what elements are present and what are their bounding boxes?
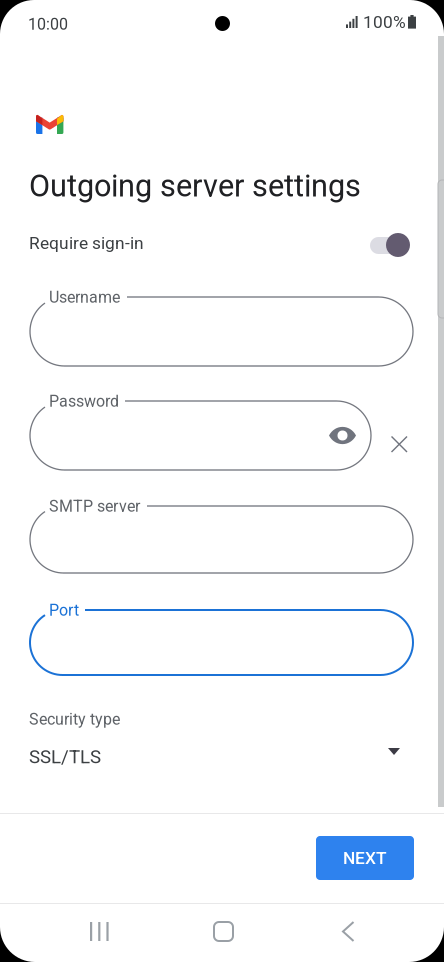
button[interactable]: Home	[214, 922, 233, 941]
button[interactable]: Show password	[329, 427, 356, 444]
staticText: Password	[49, 392, 119, 411]
button[interactable]: Back	[343, 922, 354, 941]
staticText: Security type	[29, 710, 120, 729]
staticText: 10:00	[28, 15, 68, 34]
button[interactable]: Require sign-in	[370, 233, 411, 259]
button[interactable]: Clear password	[391, 436, 408, 453]
staticText: Outgoing server settings	[29, 168, 361, 204]
staticText: Require sign-in	[29, 233, 144, 253]
button[interactable]: NEXT	[316, 836, 414, 880]
staticText: SMTP server	[49, 497, 140, 516]
button[interactable]: Recent apps	[90, 922, 109, 941]
staticText: Port	[49, 601, 79, 620]
staticText: 100%	[363, 12, 406, 32]
button[interactable]: Choose security type	[388, 748, 400, 755]
staticText: Username	[49, 288, 120, 307]
staticText: SSL/TLS	[29, 746, 101, 768]
staticText: NEXT	[343, 848, 387, 868]
